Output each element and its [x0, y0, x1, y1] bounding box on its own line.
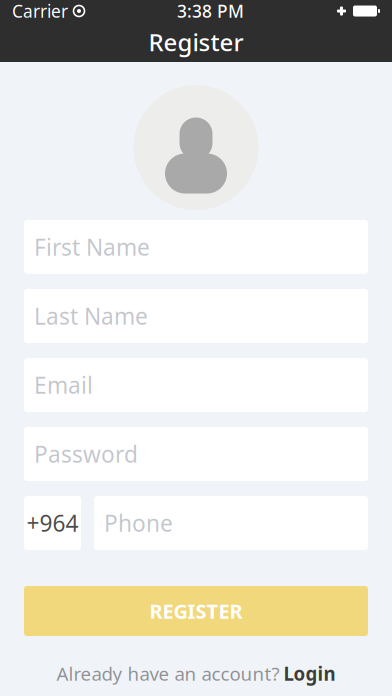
staticText: Already have an account? [56, 661, 279, 686]
button[interactable]: Already have an account? [56, 661, 335, 686]
staticText: Carrier [12, 0, 68, 22]
staticText: Login [283, 661, 335, 686]
button[interactable]: First Name [24, 220, 368, 274]
staticText: Password [34, 439, 138, 469]
button[interactable]: Phone [94, 496, 368, 550]
button[interactable]: REGISTER [24, 586, 368, 636]
staticText: +964 [26, 508, 78, 538]
staticText: Register [148, 26, 243, 58]
button[interactable]: Password [24, 427, 368, 481]
button[interactable]: Last Name [24, 289, 368, 343]
button[interactable]: Email [24, 358, 368, 412]
button[interactable]: +964 [24, 496, 81, 550]
staticText: REGISTER [149, 598, 242, 624]
staticText: 3:38 PM [177, 0, 244, 22]
staticText: Phone [104, 508, 173, 538]
staticText: First Name [34, 232, 150, 262]
staticText: Email [34, 370, 93, 400]
staticText: Last Name [34, 301, 148, 331]
